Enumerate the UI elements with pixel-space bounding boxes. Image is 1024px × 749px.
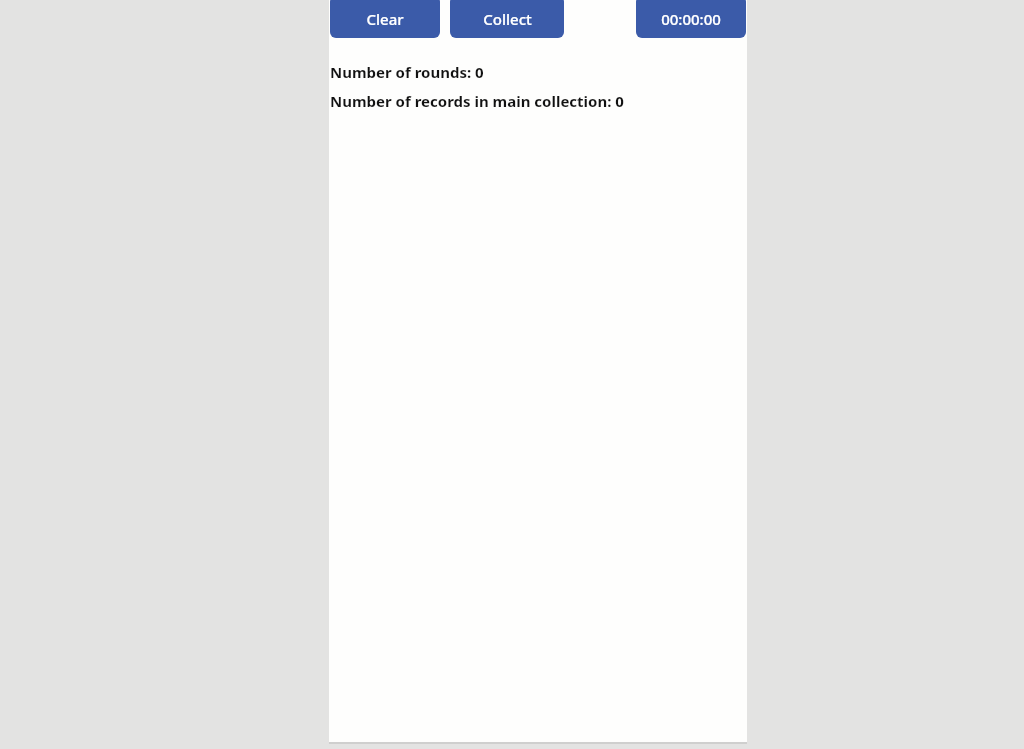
staticText: Clear — [366, 9, 404, 29]
button[interactable]: Collect — [450, 0, 564, 38]
staticText: Number of rounds: 0 — [330, 62, 484, 82]
staticText: 00:00:00 — [661, 9, 721, 29]
staticText: Collect — [483, 9, 532, 29]
button[interactable]: Timer — [636, 0, 746, 38]
staticText: Number of records in main collection: 0 — [330, 91, 624, 111]
button[interactable]: Clear — [330, 0, 440, 38]
